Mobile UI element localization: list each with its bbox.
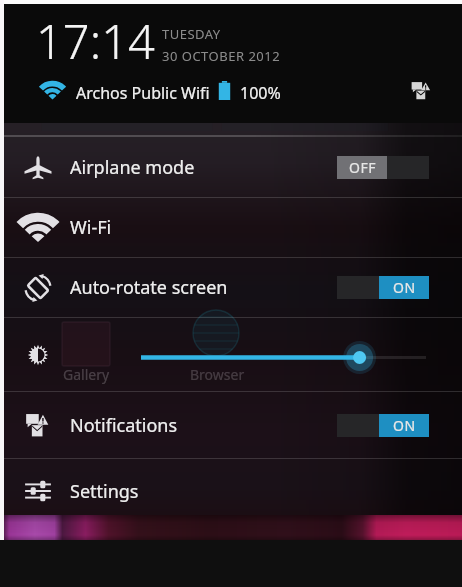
button[interactable]: ON [337, 276, 429, 299]
button[interactable]: Notifications [409, 79, 434, 102]
staticText: Auto-rotate screen [70, 275, 228, 300]
button[interactable]: Notifications [0, 392, 462, 458]
staticText: TUESDAY [162, 25, 221, 43]
button[interactable] [0, 318, 462, 391]
staticText: ON [393, 278, 416, 297]
staticText: Gallery [63, 365, 110, 384]
button[interactable]: Settings [0, 459, 462, 523]
staticText: Airplane mode [70, 155, 195, 180]
button[interactable]: ON [337, 414, 429, 437]
button[interactable]: OFF [337, 156, 429, 179]
staticText: Wi-Fi [70, 215, 112, 240]
staticText: 17:14 [36, 9, 155, 73]
staticText: Browser [190, 365, 245, 384]
staticText: Archos Public Wifi [76, 82, 210, 104]
staticText: Notifications [70, 413, 178, 438]
staticText: 30 OCTOBER 2012 [162, 47, 281, 65]
staticText: Settings [70, 479, 139, 504]
staticText: OFF [349, 158, 376, 177]
button[interactable]: Wi-Fi [0, 198, 462, 257]
button[interactable]: Auto-rotate screen [0, 258, 462, 317]
staticText: 100% [240, 82, 281, 104]
staticText: ON [393, 416, 416, 435]
button[interactable]: Airplane mode [0, 137, 462, 197]
